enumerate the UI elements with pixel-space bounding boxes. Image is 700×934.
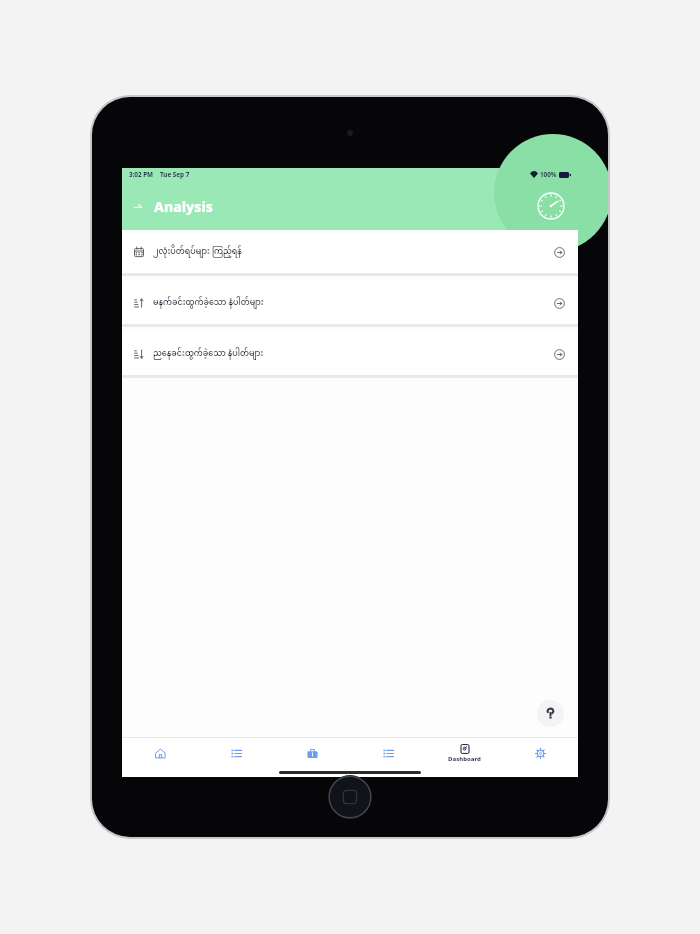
button[interactable]: Bag <box>274 738 350 768</box>
button[interactable]: Speedometer <box>535 190 567 222</box>
button[interactable]: Lists <box>198 738 274 768</box>
staticText: ၂လုံးပိတ်ရပ်များ ကြည့်ရန် <box>153 243 242 260</box>
button[interactable]: Open <box>552 347 566 361</box>
button[interactable]: Open <box>552 245 566 259</box>
button[interactable]: Dashboard <box>426 738 502 768</box>
button[interactable]: ညနေခင်းထွက်ခဲ့သော နံပါတ်များ <box>122 332 578 375</box>
button[interactable]: Records <box>350 738 426 768</box>
button[interactable]: မနက်ခင်းထွက်ခဲ့သော နံပါတ်များ <box>122 281 578 324</box>
button[interactable]: Open <box>552 296 566 310</box>
button[interactable]: ၂လုံးပိတ်ရပ်များ ကြည့်ရန် <box>122 230 578 273</box>
staticText: ညနေခင်းထွက်ခဲ့သော နံပါတ်များ <box>153 345 264 362</box>
button[interactable]: Back <box>130 198 146 214</box>
staticText: 3:02 PM <box>129 170 154 179</box>
staticText: Analysis <box>154 197 213 216</box>
staticText: Dashboard <box>448 755 481 763</box>
button[interactable]: Settings <box>502 738 578 768</box>
staticText: 100% <box>540 170 557 179</box>
button[interactable]: Help <box>537 700 564 727</box>
staticText: မနက်ခင်းထွက်ခဲ့သော နံပါတ်များ <box>153 294 264 311</box>
staticText: Tue Sep 7 <box>160 170 190 179</box>
button[interactable]: Home <box>122 738 198 768</box>
